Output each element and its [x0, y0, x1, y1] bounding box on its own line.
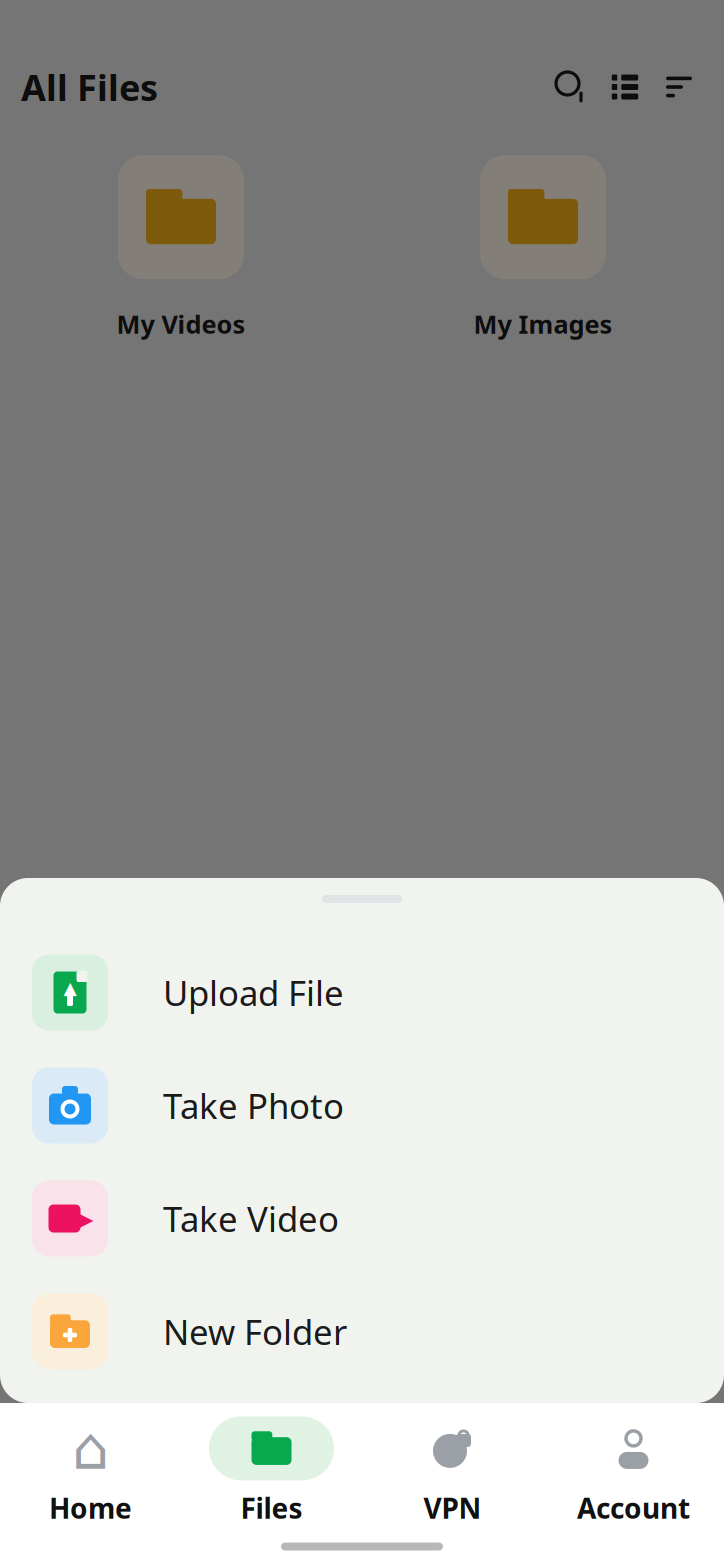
button[interactable]: ▶	[0, 1162, 724, 1275]
staticText: My Images	[473, 307, 612, 341]
button[interactable]: New Folder	[0, 1275, 724, 1388]
staticText: ▶	[72, 1203, 94, 1234]
staticText: My Videos	[116, 307, 245, 341]
button[interactable]: ⌂	[0, 1420, 181, 1522]
staticText: All Files	[21, 63, 158, 111]
button[interactable]: List view	[598, 60, 652, 114]
button[interactable]: Sort	[652, 60, 706, 114]
staticText: Upload File	[163, 969, 344, 1015]
button[interactable]: My Videos	[0, 177, 362, 319]
staticText: New Folder	[163, 1308, 347, 1354]
button[interactable]: ▲	[0, 936, 724, 1049]
button[interactable]: My Images	[362, 177, 724, 319]
button[interactable]: Take Photo	[0, 1049, 724, 1162]
button[interactable]: Account	[543, 1420, 724, 1522]
button[interactable]: Search	[544, 60, 598, 114]
staticText: Take Video	[163, 1195, 339, 1241]
button[interactable]: VPN	[362, 1420, 543, 1522]
button[interactable]: Files	[181, 1420, 362, 1522]
staticText: ▲	[63, 978, 76, 998]
staticText: VPN	[423, 1489, 481, 1527]
staticText: Files	[240, 1489, 302, 1527]
staticText: Home	[49, 1489, 132, 1527]
staticText: Account	[577, 1489, 690, 1527]
staticText: ⌂	[72, 1415, 109, 1482]
staticText: Take Photo	[163, 1082, 344, 1128]
